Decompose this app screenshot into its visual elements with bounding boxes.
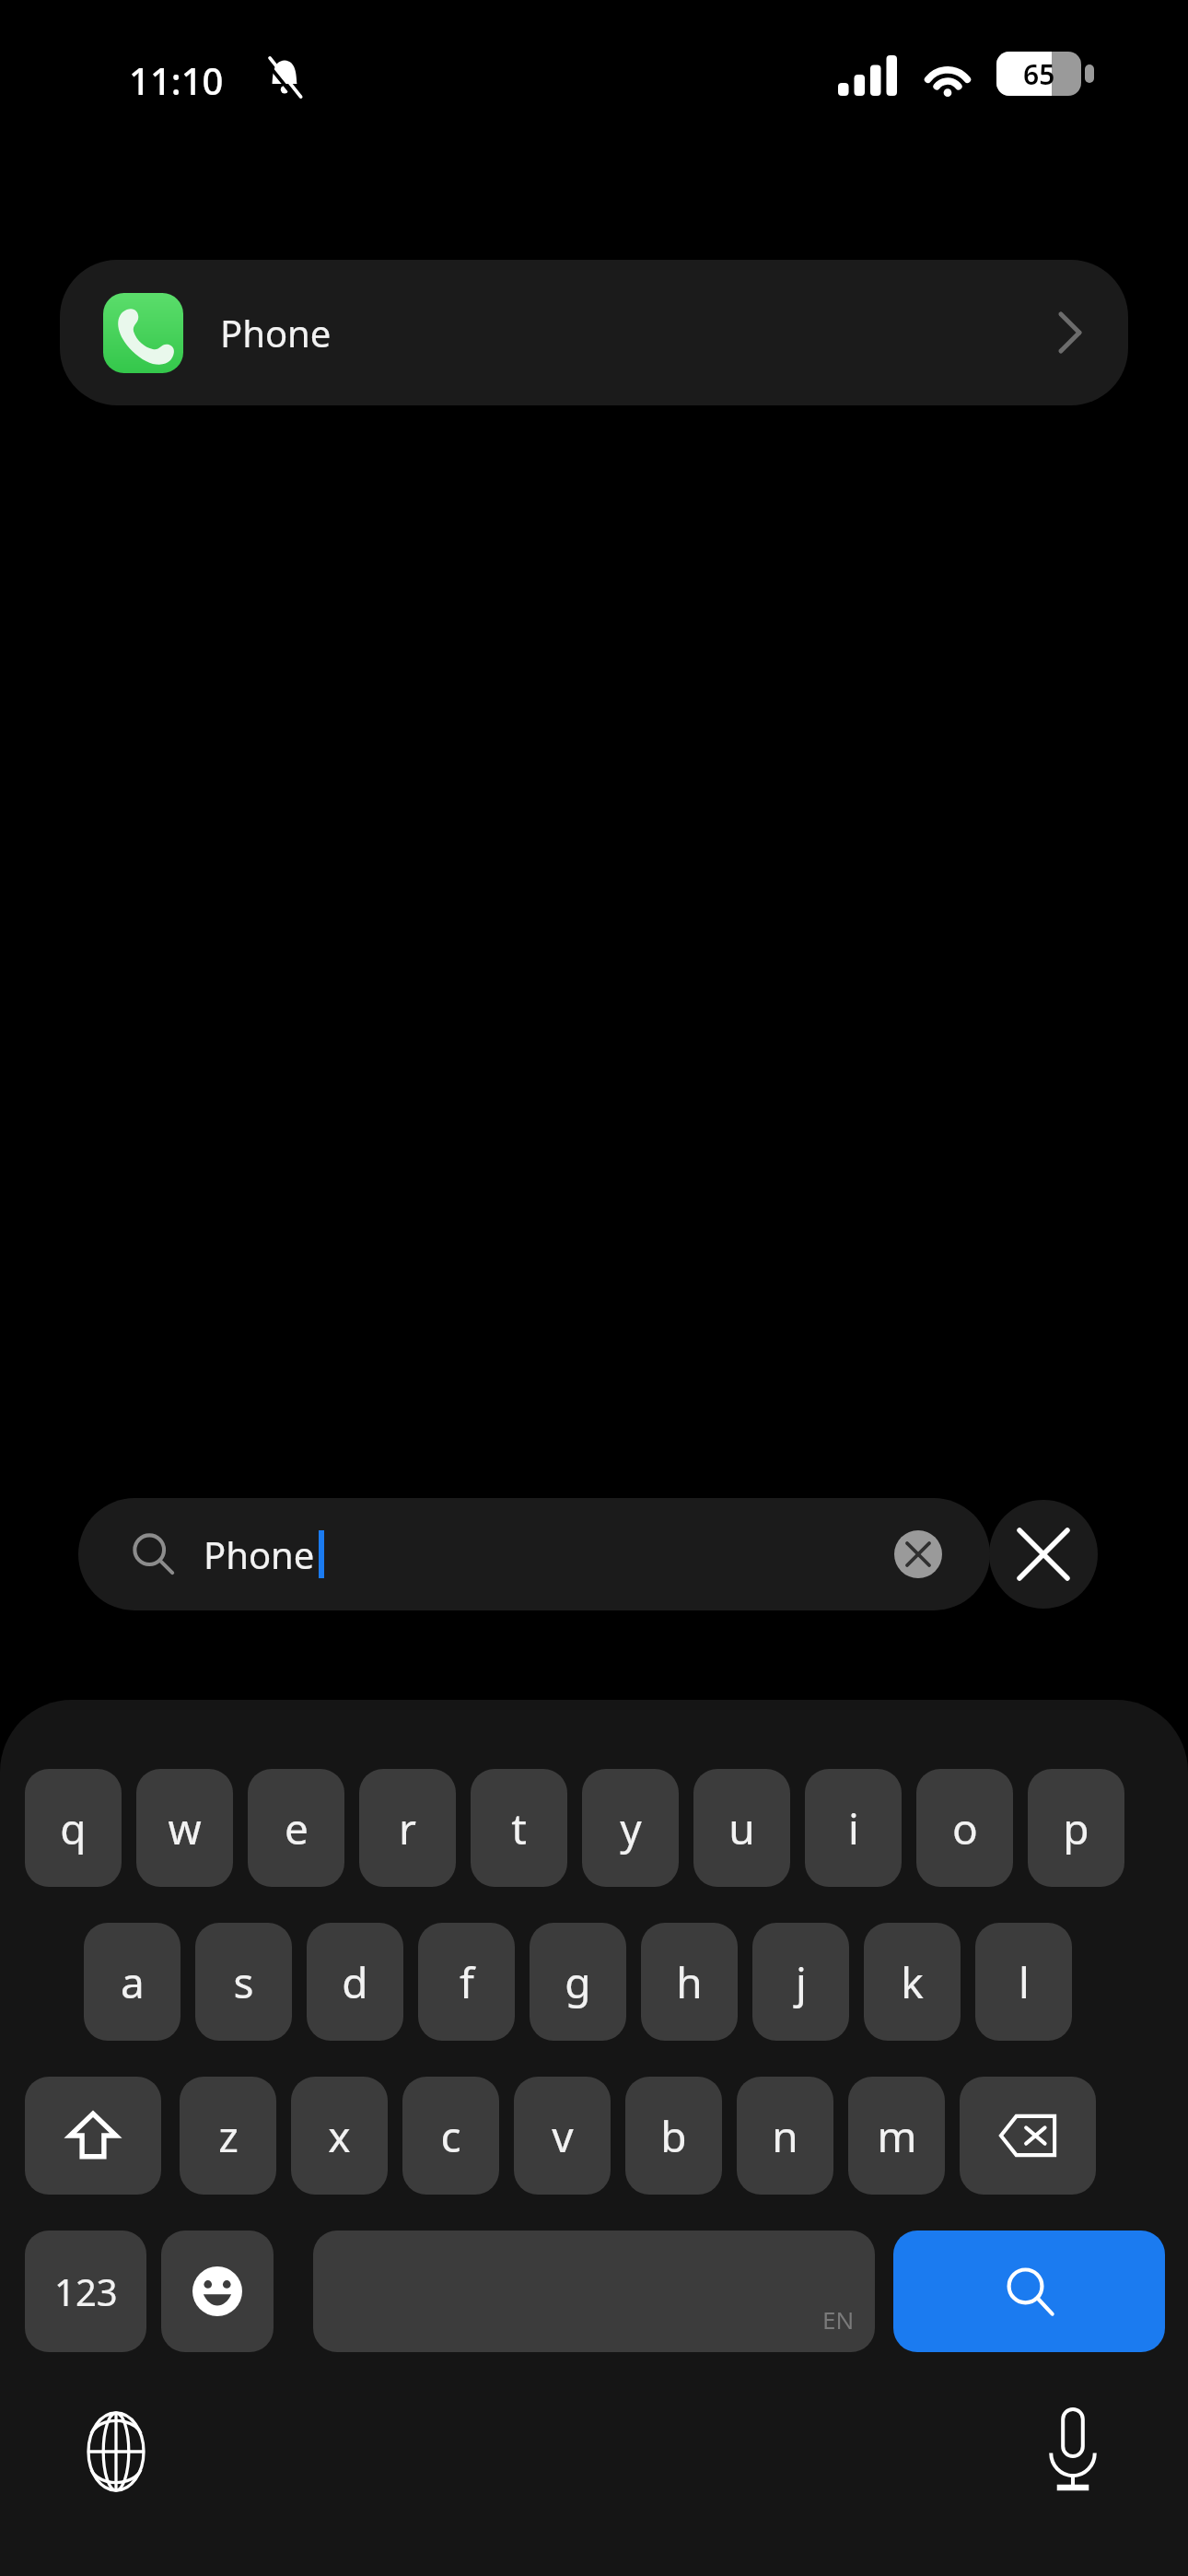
staticText: m [877,2107,917,2165]
button[interactable]: r [359,1769,456,1887]
button[interactable]: Space [313,2231,875,2352]
staticText: y [620,1799,642,1857]
button[interactable]: Search [893,2231,1165,2352]
staticText: Phone [204,1529,315,1579]
button[interactable]: a [84,1923,181,2041]
button[interactable]: v [514,2077,611,2195]
button[interactable]: 123 [25,2231,146,2352]
staticText: n [772,2107,798,2165]
staticText: b [660,2107,687,2165]
button[interactable]: y [582,1769,679,1887]
staticText: q [60,1799,87,1857]
button[interactable]: Emoji [161,2231,274,2352]
button[interactable]: k [864,1923,961,2041]
button[interactable]: w [136,1769,233,1887]
staticText: g [565,1953,591,2011]
staticText: v [552,2107,574,2165]
button[interactable]: x [291,2077,388,2195]
button[interactable]: q [25,1769,122,1887]
button[interactable]: g [530,1923,626,2041]
button[interactable]: l [975,1923,1072,2041]
button[interactable]: m [848,2077,945,2195]
staticText: r [399,1799,416,1857]
staticText: 123 [54,2266,118,2316]
button[interactable]: t [471,1769,567,1887]
button[interactable]: b [625,2077,722,2195]
staticText: c [440,2107,461,2165]
staticText: k [901,1953,924,2011]
staticText: i [848,1799,859,1857]
staticText: 11:10 [129,55,224,105]
button[interactable]: f [418,1923,515,2041]
button[interactable]: d [307,1923,403,2041]
staticText: z [218,2107,239,2165]
button[interactable]: i [805,1769,902,1887]
button[interactable]: u [693,1769,790,1887]
button[interactable]: Phone [60,260,1128,405]
staticText: Phone [220,308,332,357]
staticText: p [1063,1799,1089,1857]
button[interactable]: Shift [25,2077,161,2195]
staticText: e [285,1799,309,1857]
staticText: a [121,1953,145,2011]
button[interactable]: c [402,2077,499,2195]
button[interactable]: s [195,1923,292,2041]
button[interactable]: h [641,1923,738,2041]
button[interactable]: o [916,1769,1013,1887]
staticText: 65 [1023,55,1055,93]
staticText: w [168,1799,202,1857]
button[interactable]: Clear text [894,1530,942,1578]
staticText: l [1019,1953,1030,2011]
button[interactable]: e [248,1769,344,1887]
staticText: f [460,1953,474,2011]
staticText: x [328,2107,351,2165]
staticText: s [233,1953,254,2011]
staticText: EN [822,2303,855,2336]
staticText: h [676,1953,703,2011]
button[interactable]: Close search [989,1500,1098,1609]
staticText: d [342,1953,368,2011]
staticText: o [952,1799,978,1857]
button[interactable]: Voice input [1039,2406,1107,2494]
staticText: j [796,1953,807,2011]
button[interactable]: z [180,2077,276,2195]
button[interactable]: p [1028,1769,1124,1887]
staticText: t [511,1799,527,1857]
button[interactable]: Phone [78,1498,990,1610]
button[interactable]: Backspace [960,2077,1096,2195]
button[interactable]: Change language [83,2409,149,2494]
button[interactable]: n [737,2077,833,2195]
staticText: u [728,1799,755,1857]
button[interactable]: j [752,1923,849,2041]
